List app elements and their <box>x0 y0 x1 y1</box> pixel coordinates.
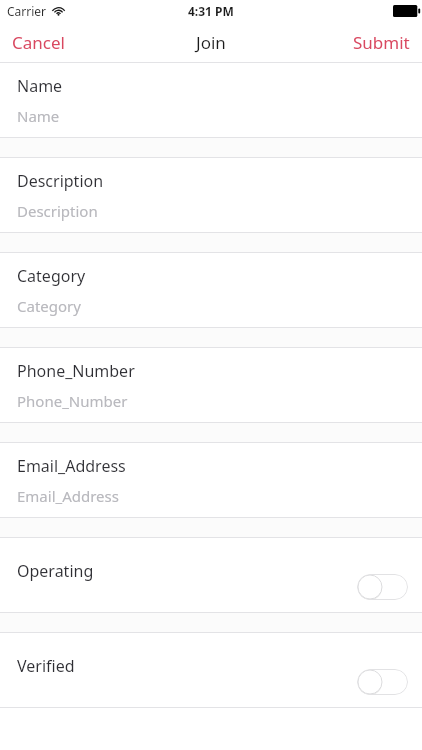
button[interactable]: Phone_Number <box>0 348 422 422</box>
staticText: Submit <box>353 31 410 54</box>
button[interactable]: Operating <box>0 538 422 612</box>
staticText: Phone_Number <box>17 360 135 382</box>
button[interactable]: Description <box>0 158 422 232</box>
staticText: Carrier <box>7 3 47 19</box>
button[interactable]: Cancel <box>0 22 77 62</box>
staticText: Email_Address <box>17 455 126 477</box>
button[interactable]: Email_Address <box>0 443 422 517</box>
staticText: Description <box>17 201 98 221</box>
staticText: Verified <box>17 655 75 677</box>
button[interactable]: Verified <box>0 633 422 707</box>
staticText: Operating <box>17 560 94 582</box>
button[interactable]: Category <box>0 253 422 327</box>
staticText: Email_Address <box>17 486 119 506</box>
staticText: Join <box>196 31 226 54</box>
staticText: 4:31 PM <box>188 3 234 19</box>
button[interactable]: Toggle <box>357 669 408 695</box>
button[interactable]: Name <box>0 63 422 137</box>
staticText: Name <box>17 75 63 97</box>
button[interactable]: Toggle <box>357 574 408 600</box>
staticText: Category <box>17 265 86 287</box>
staticText: Phone_Number <box>17 391 128 411</box>
button[interactable]: Submit <box>341 22 422 62</box>
staticText: Cancel <box>12 31 65 54</box>
staticText: Category <box>17 296 81 316</box>
staticText: Name <box>17 106 60 126</box>
staticText: Description <box>17 170 104 192</box>
